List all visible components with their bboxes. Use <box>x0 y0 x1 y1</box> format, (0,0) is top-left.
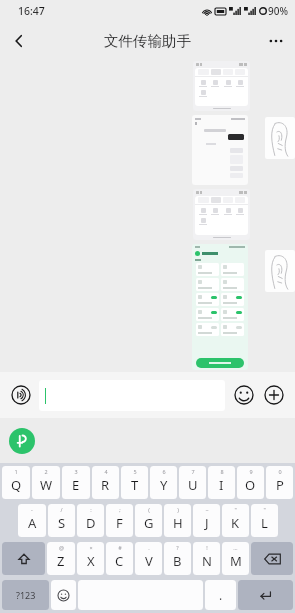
staticText: ? <box>176 544 179 551</box>
button[interactable]: ; <box>106 504 133 537</box>
staticText: E <box>72 476 80 494</box>
button[interactable]: 6 <box>150 466 177 499</box>
staticText: / <box>60 506 63 513</box>
button[interactable]: " <box>222 504 249 537</box>
button[interactable]: 9 <box>237 466 264 499</box>
staticText: 5 <box>133 468 137 475</box>
staticText: 1 <box>14 468 18 475</box>
button[interactable]: 8 <box>208 466 235 499</box>
button[interactable]: - <box>18 504 46 537</box>
button[interactable]: Enter <box>238 580 293 610</box>
button[interactable] <box>192 244 248 370</box>
staticText: D <box>86 514 96 532</box>
staticText: I <box>219 476 224 494</box>
staticText: . <box>148 544 150 551</box>
staticText: L <box>261 514 268 532</box>
button[interactable]: " <box>251 504 278 537</box>
staticText: P <box>276 476 284 494</box>
staticText: C <box>115 552 124 570</box>
staticText: # <box>118 544 122 551</box>
staticText: 2 <box>44 468 48 475</box>
staticText: 3 <box>74 468 78 475</box>
staticText: S <box>58 514 66 532</box>
staticText: V <box>145 552 153 570</box>
staticText: " <box>234 506 237 513</box>
button[interactable]: × <box>77 542 104 575</box>
staticText: 7 <box>191 468 195 475</box>
staticText: Z <box>57 552 65 570</box>
staticText: F <box>116 514 123 532</box>
button[interactable]: : <box>77 504 104 537</box>
button[interactable]: @ <box>47 542 75 575</box>
button[interactable]: 2 <box>32 466 60 499</box>
staticText: 16:47 <box>18 4 45 18</box>
staticText: X <box>87 552 95 570</box>
button[interactable]: Shift <box>2 542 45 575</box>
button[interactable]: # <box>106 542 133 575</box>
button[interactable]: 4 <box>92 466 119 499</box>
staticText: T <box>131 476 139 494</box>
button[interactable]: 5 <box>121 466 148 499</box>
staticText: Q <box>11 476 22 494</box>
staticText: 6 <box>162 468 166 475</box>
staticText: U <box>188 476 198 494</box>
staticText: ; <box>119 506 121 513</box>
staticText: 0 <box>278 468 282 475</box>
button[interactable] <box>193 61 250 111</box>
staticText: @ <box>59 544 64 551</box>
staticText: J <box>205 514 209 532</box>
staticText: ( <box>148 506 150 513</box>
staticText: O <box>245 476 256 494</box>
button[interactable]: . <box>135 542 162 575</box>
staticText: K <box>231 514 240 532</box>
button[interactable]: 3 <box>62 466 90 499</box>
staticText: W <box>40 476 53 494</box>
staticText: - <box>31 506 33 513</box>
staticText: 文件传输助手 <box>104 32 191 50</box>
staticText: … <box>233 544 238 551</box>
staticText: B <box>173 552 182 570</box>
button[interactable]: More functions <box>260 381 288 409</box>
button[interactable]: . <box>205 580 236 610</box>
staticText: N <box>202 552 212 570</box>
button[interactable]: ! <box>193 542 220 575</box>
button[interactable] <box>193 189 250 240</box>
button[interactable]: ?123 <box>2 580 49 610</box>
staticText: ~ <box>205 506 209 513</box>
button[interactable]: 7 <box>179 466 206 499</box>
button[interactable]: Back <box>0 22 38 60</box>
staticText: × <box>89 544 93 551</box>
button[interactable]: 1 <box>2 466 30 499</box>
staticText: 90% <box>268 4 288 18</box>
staticText: Y <box>160 476 168 494</box>
staticText: ?123 <box>16 589 36 601</box>
button[interactable]: 0 <box>266 466 293 499</box>
staticText: G <box>144 514 154 532</box>
staticText: " <box>263 506 266 513</box>
button[interactable]: Clipboard suggestion <box>9 428 35 454</box>
button[interactable]: Backspace <box>251 542 293 575</box>
staticText: 9 <box>249 468 253 475</box>
staticText: : <box>90 506 92 513</box>
button[interactable] <box>192 115 248 185</box>
button[interactable]: … <box>222 542 249 575</box>
staticText: ) <box>177 506 179 513</box>
button[interactable]: ? <box>164 542 191 575</box>
staticText: A <box>28 514 37 532</box>
button[interactable]: / <box>48 504 75 537</box>
button[interactable]: Voice input <box>7 381 35 409</box>
button[interactable]: More options <box>257 22 295 60</box>
staticText: R <box>101 476 110 494</box>
button[interactable]: ) <box>164 504 191 537</box>
staticText: . <box>219 587 223 603</box>
button[interactable]: ~ <box>193 504 220 537</box>
staticText: 4 <box>104 468 108 475</box>
staticText: M <box>230 552 242 570</box>
button[interactable]: Emoji keyboard <box>51 580 76 610</box>
button[interactable]: ( <box>135 504 162 537</box>
staticText: H <box>173 514 183 532</box>
button[interactable]: Emoji <box>230 381 258 409</box>
button[interactable] <box>39 380 225 411</box>
staticText: ! <box>206 544 208 551</box>
